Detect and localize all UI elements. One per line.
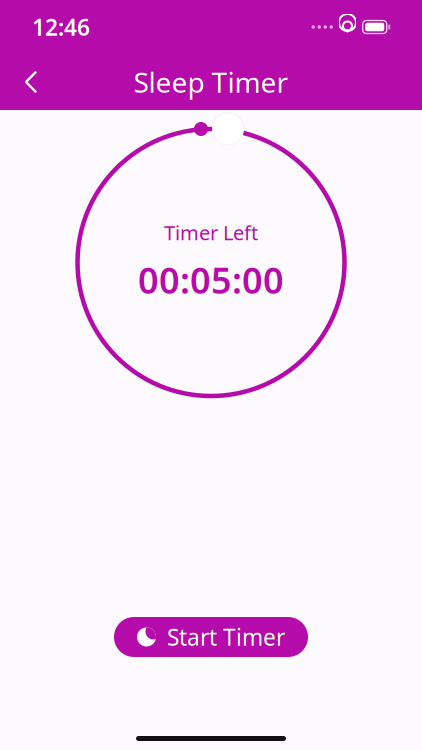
staticText: 12:46 — [32, 12, 90, 42]
button[interactable]: Back — [8, 59, 54, 105]
button[interactable]: Start Timer — [114, 617, 308, 657]
staticText: Sleep Timer — [133, 63, 288, 101]
staticText: 00:05:00 — [138, 256, 284, 304]
staticText: Start Timer — [167, 622, 285, 652]
staticText: Timer Left — [164, 219, 258, 246]
